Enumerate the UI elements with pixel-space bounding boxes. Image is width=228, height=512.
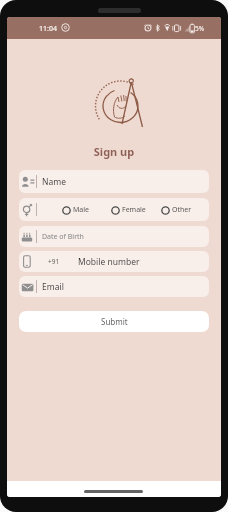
button[interactable]: Female [111,205,146,215]
staticText: Other [172,205,192,215]
button[interactable]: Submit [19,311,209,332]
staticText: Sign up [7,144,221,159]
button[interactable]: Male [62,205,90,215]
staticText: Name [42,176,66,188]
staticText: Male [73,205,90,215]
button[interactable]: Email [19,276,209,297]
staticText: Mobile number [78,256,140,268]
staticText: 11:04 [39,24,57,34]
staticText: Submit [101,316,128,327]
button[interactable]: Date of Birth [19,226,209,247]
button[interactable]: Name [19,170,209,193]
button[interactable]: Male [19,198,209,221]
staticText: +91 [48,257,60,266]
staticText: Date of Birth [42,232,84,242]
button[interactable]: +91 [19,251,209,272]
button[interactable]: Other [161,205,192,215]
staticText: 5% [195,24,205,33]
staticText: Female [122,205,146,215]
staticText: Email [42,281,64,293]
